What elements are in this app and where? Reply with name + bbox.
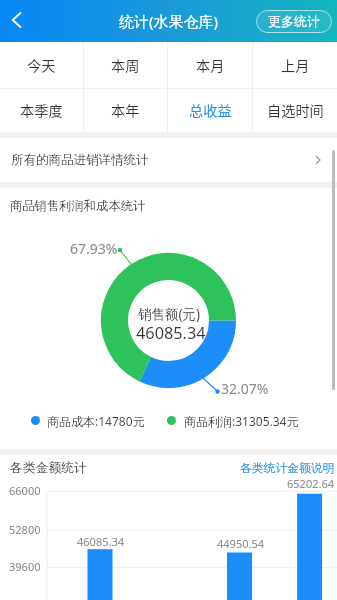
button[interactable]: 今天 — [0, 42, 83, 88]
staticText: 39600 — [9, 559, 41, 574]
staticText: 44950.54 — [217, 536, 264, 551]
button[interactable]: 本周 — [84, 42, 167, 88]
staticText: 商品销售利润和成本统计 — [10, 198, 146, 213]
staticText: 自选时间 — [267, 100, 324, 121]
button[interactable]: 本年 — [84, 89, 167, 132]
staticText: 本月 — [196, 55, 225, 76]
staticText: 总收益 — [189, 100, 232, 121]
button[interactable]: 上月 — [253, 42, 337, 88]
button[interactable]: 所有的商品进销详情统计 — [0, 138, 337, 182]
staticText: 各类金额统计 — [10, 460, 87, 476]
staticText: 商品成本:14780元 — [47, 413, 145, 429]
button[interactable]: 本月 — [168, 42, 252, 88]
staticText: 32.07% — [221, 379, 269, 398]
staticText: 销售额(元) — [138, 305, 201, 323]
button[interactable]: 各类统计金额说明 — [240, 461, 335, 476]
staticText: 商品利润:31305.34元 — [184, 413, 299, 429]
button[interactable]: 更多统计 — [256, 10, 332, 33]
staticText: 67.93% — [70, 239, 118, 258]
staticText: 统计(水果仓库) — [119, 11, 219, 31]
staticText: 65202.64 — [287, 476, 334, 491]
staticText: 各类统计金额说明 — [240, 461, 335, 476]
staticText: 66000 — [9, 483, 41, 498]
staticText: 52800 — [9, 522, 41, 537]
button[interactable]: 本季度 — [0, 89, 83, 132]
staticText: 所有的商品进销详情统计 — [11, 152, 149, 168]
staticText: 上月 — [281, 55, 310, 76]
staticText: 46085.34 — [77, 534, 124, 549]
button[interactable]: 总收益 — [168, 89, 252, 132]
staticText: 今天 — [27, 55, 56, 76]
button[interactable]: 自选时间 — [253, 89, 337, 132]
staticText: 本周 — [111, 55, 140, 76]
staticText: 本年 — [111, 100, 140, 121]
staticText: 本季度 — [20, 100, 63, 121]
staticText: 46085.34 — [136, 322, 206, 344]
staticText: 更多统计 — [268, 13, 320, 29]
button[interactable]: Back — [0, 0, 36, 42]
